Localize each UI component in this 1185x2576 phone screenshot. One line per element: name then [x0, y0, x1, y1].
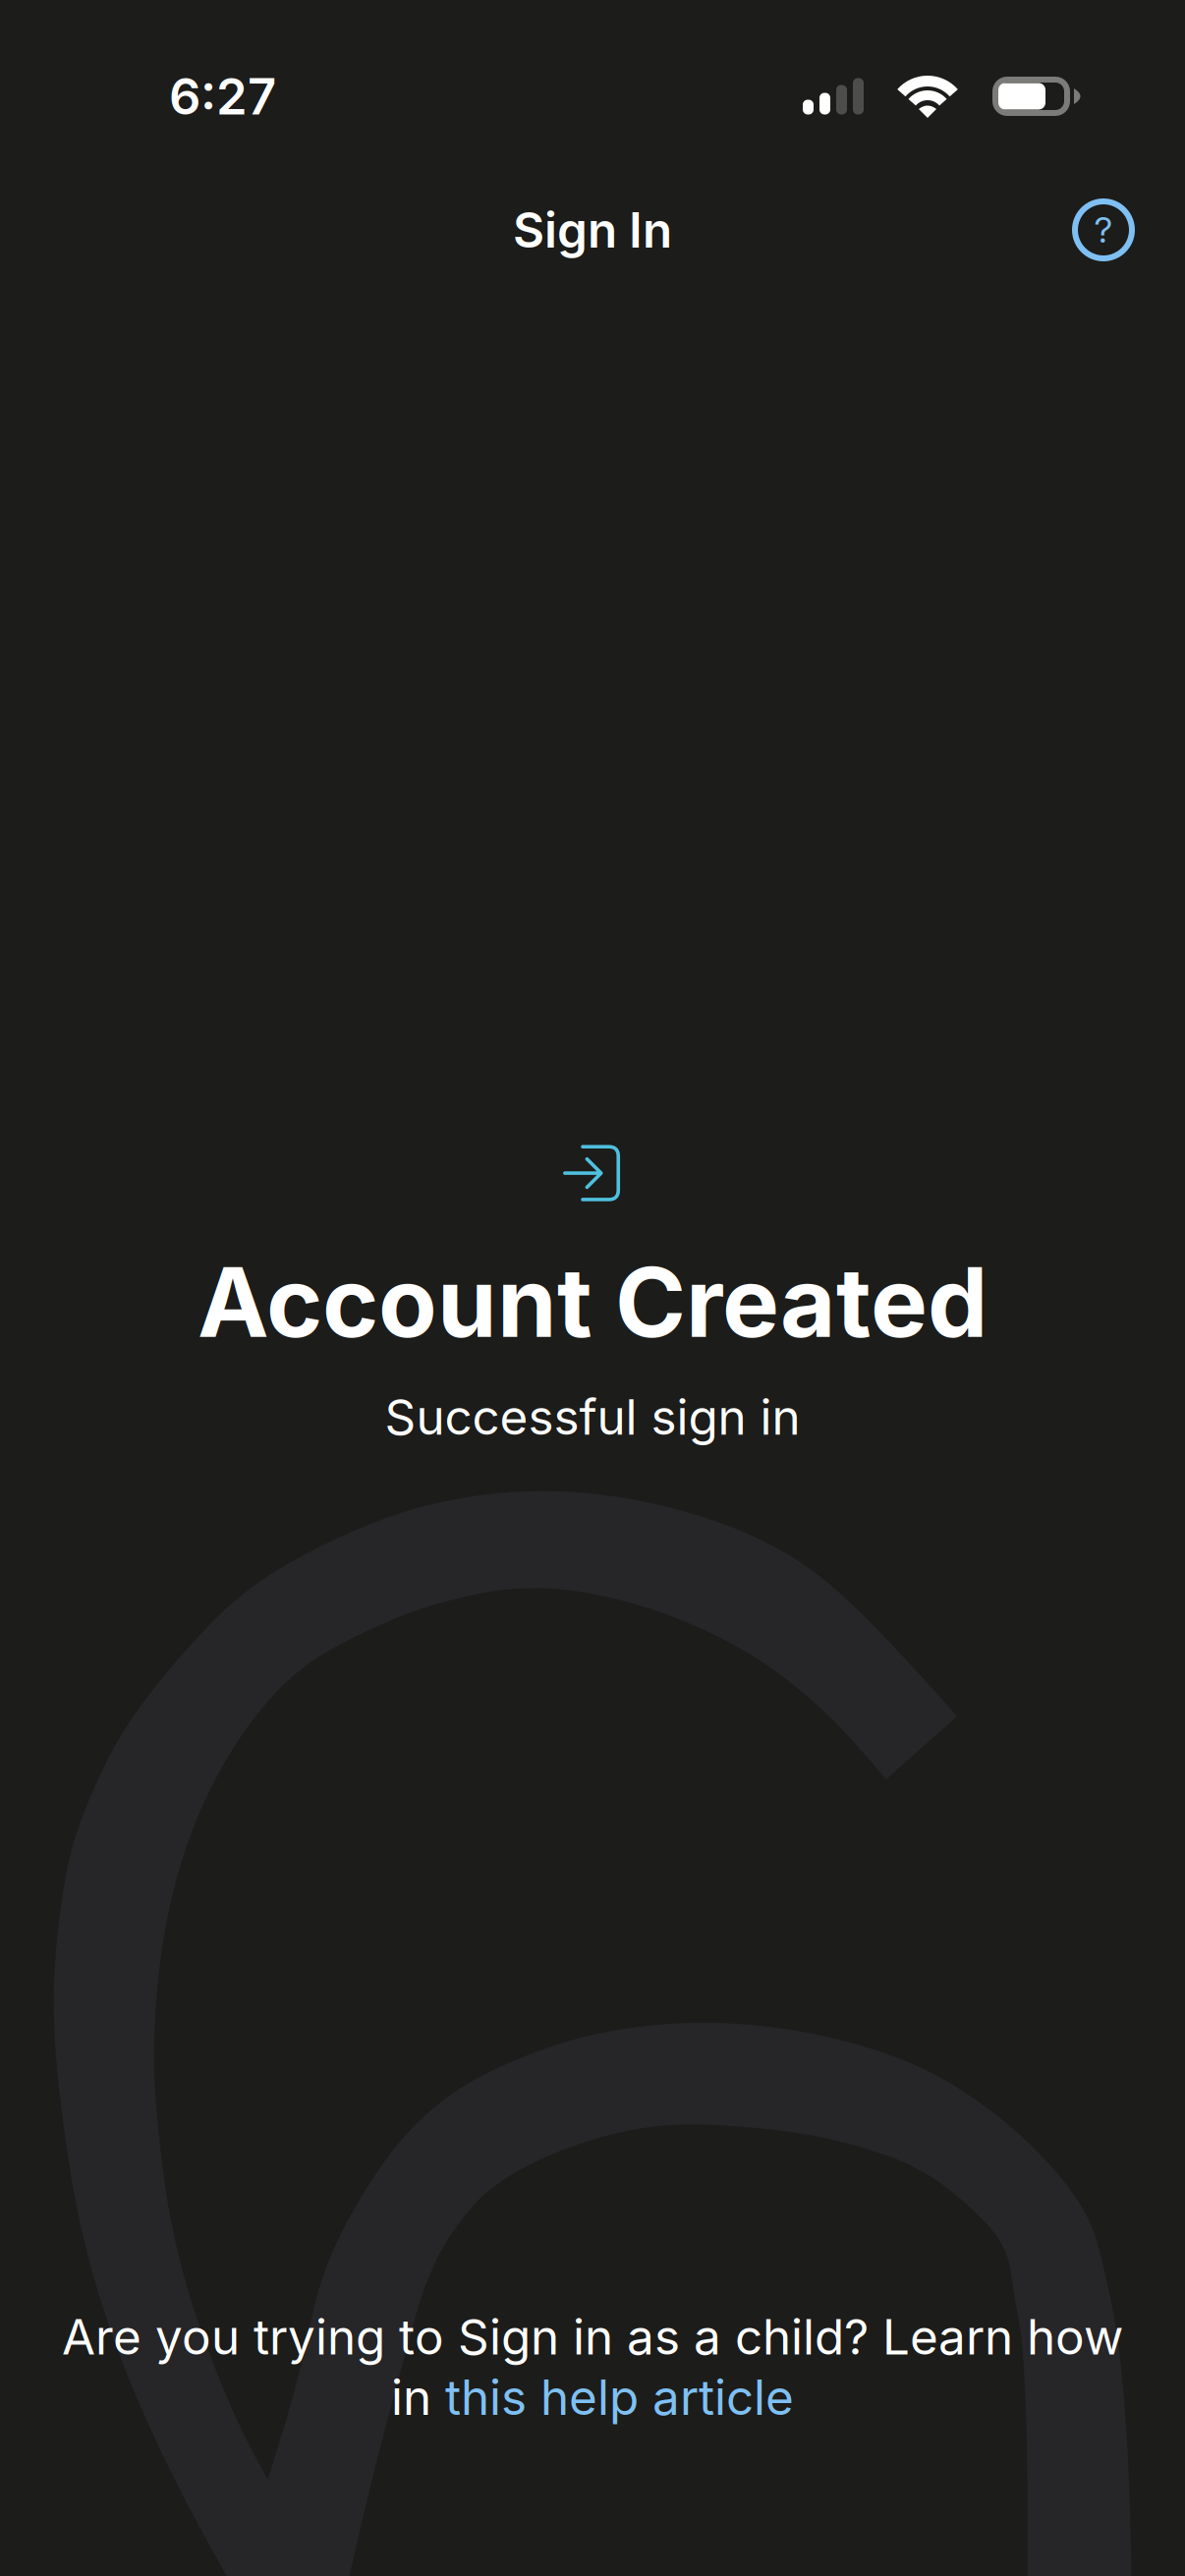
staticText: Sign In — [513, 201, 672, 259]
staticText: this help article — [445, 2368, 794, 2427]
staticText: 6:27 — [169, 66, 276, 126]
staticText: Account Created — [197, 1244, 987, 1360]
staticText: Are you trying to Sign in as a child? Le… — [62, 2307, 1123, 2366]
staticText: in — [391, 2368, 445, 2427]
button[interactable]: Help — [1058, 185, 1149, 275]
button[interactable]: Are you trying to Sign in as a child? Le… — [0, 2307, 1185, 2427]
staticText: ? — [1094, 208, 1113, 251]
staticText: Successful sign in — [385, 1388, 800, 1446]
